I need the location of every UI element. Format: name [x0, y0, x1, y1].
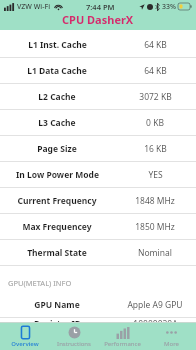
- staticText: 1850 MHz: [135, 221, 175, 233]
- staticText: More: [164, 340, 179, 348]
- staticText: Performance: [104, 340, 141, 348]
- staticText: Thermal State: [27, 247, 87, 259]
- staticText: Overview: [11, 340, 39, 348]
- button[interactable]: In Low Power Mode: [0, 162, 196, 187]
- button[interactable]: Thermal State: [0, 240, 196, 265]
- staticText: Apple A9 GPU: [127, 299, 183, 311]
- staticText: YES: [148, 169, 163, 181]
- staticText: 16 KB: [144, 143, 167, 155]
- staticText: 33%: [162, 2, 176, 12]
- staticText: L2 Cache: [38, 91, 76, 103]
- staticText: GPU(METAL) INFO: [8, 278, 72, 288]
- staticText: Current Frequency: [17, 195, 97, 207]
- staticText: Instructions: [57, 340, 91, 348]
- staticText: CPU DasherX: [62, 12, 134, 27]
- button[interactable]: Overview: [2, 323, 48, 350]
- staticText: 10000020A: [133, 318, 178, 322]
- staticText: 0 KB: [146, 117, 164, 129]
- staticText: 7:44 PM: [86, 2, 115, 12]
- staticText: VZW Wi-Fi: [17, 2, 51, 12]
- button[interactable]: More: [148, 323, 194, 350]
- button[interactable]: GPU Name: [0, 292, 196, 317]
- button[interactable]: L3 Cache: [0, 110, 196, 135]
- staticText: GPU Name: [34, 299, 80, 311]
- button[interactable]: L2 Cache: [0, 84, 196, 109]
- staticText: Registry ID: [34, 318, 81, 322]
- button[interactable]: Max Frequencey: [0, 214, 196, 239]
- staticText: Nominal: [138, 247, 172, 259]
- button[interactable]: Current Frequency: [0, 188, 196, 213]
- staticText: L3 Cache: [38, 117, 76, 129]
- button[interactable]: Performance: [99, 323, 145, 350]
- staticText: 3072 KB: [139, 91, 172, 103]
- staticText: L1 Inst. Cache: [28, 39, 87, 51]
- staticText: L1 Data Cache: [27, 65, 87, 77]
- staticText: In Low Power Mode: [16, 169, 99, 181]
- button[interactable]: L1 Data Cache: [0, 58, 196, 83]
- button[interactable]: L1 Inst. Cache: [0, 32, 196, 57]
- staticText: Page Size: [37, 143, 77, 155]
- staticText: 64 KB: [144, 39, 167, 51]
- staticText: Max Frequencey: [22, 221, 92, 233]
- button[interactable]: Instructions: [51, 323, 97, 350]
- button[interactable]: Registry ID: [0, 318, 196, 322]
- staticText: 64 KB: [144, 65, 167, 77]
- button[interactable]: Page Size: [0, 136, 196, 161]
- staticText: 1848 MHz: [135, 195, 175, 207]
